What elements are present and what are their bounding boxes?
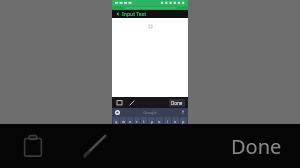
staticText: t	[143, 119, 145, 124]
button[interactable]: Done	[169, 99, 185, 107]
button[interactable]: Keyboard settings	[114, 109, 120, 115]
button[interactable]: Clipboard	[115, 98, 124, 107]
button[interactable]: u	[156, 117, 163, 126]
staticText: y	[151, 119, 153, 124]
staticText: q	[115, 119, 118, 124]
button[interactable]: w	[120, 117, 126, 126]
button[interactable]: Clipboard	[14, 127, 52, 165]
staticText: Done	[171, 100, 183, 106]
staticText: o	[174, 119, 177, 124]
staticText: Input Text	[122, 11, 147, 18]
button[interactable]: Pen	[127, 98, 136, 107]
button[interactable]: e	[127, 117, 133, 126]
button[interactable]: t	[141, 117, 147, 126]
button[interactable]: Back	[114, 10, 122, 18]
button[interactable]: o	[172, 117, 179, 126]
button[interactable]: r	[134, 117, 140, 126]
staticText: w	[122, 119, 125, 124]
staticText: Done	[231, 133, 282, 160]
staticText: Google	[143, 110, 157, 115]
button[interactable]: q	[113, 117, 119, 126]
staticText: e	[129, 119, 132, 124]
staticText: u	[158, 119, 161, 124]
button[interactable]: Done	[227, 129, 286, 164]
staticText: p	[182, 119, 185, 124]
button[interactable]: Pen	[74, 125, 116, 167]
staticText: r	[136, 119, 138, 124]
button[interactable]: Voice input	[180, 109, 186, 115]
button[interactable]: p	[180, 117, 187, 126]
button[interactable]: i	[164, 117, 171, 126]
staticText: i	[167, 119, 168, 124]
button[interactable]: y	[148, 117, 155, 126]
